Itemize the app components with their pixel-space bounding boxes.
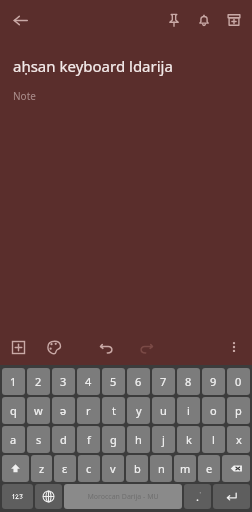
button[interactable]: g bbox=[102, 426, 125, 453]
staticText: q bbox=[10, 403, 17, 418]
staticText: Note bbox=[13, 89, 36, 103]
staticText: e bbox=[206, 461, 213, 476]
staticText: 7 bbox=[160, 374, 167, 389]
staticText: x bbox=[236, 432, 242, 447]
staticText: aḥsan keyboard ldarija bbox=[13, 56, 173, 76]
staticText: Moroccan Darija - MU bbox=[87, 492, 159, 502]
button[interactable]: o bbox=[202, 397, 225, 424]
button[interactable]: ə bbox=[52, 397, 75, 424]
staticText: z bbox=[39, 461, 45, 476]
staticText: 1 bbox=[10, 374, 17, 389]
staticText: o bbox=[210, 403, 217, 418]
staticText: 2 bbox=[35, 374, 42, 389]
button[interactable]: Language bbox=[35, 484, 62, 509]
button[interactable]: c bbox=[78, 455, 100, 482]
button[interactable]: l bbox=[202, 426, 225, 453]
button[interactable]: i bbox=[177, 397, 200, 424]
staticText: f bbox=[87, 432, 91, 447]
button[interactable]: r bbox=[77, 397, 100, 424]
staticText: l bbox=[212, 432, 215, 447]
button[interactable]: 7 bbox=[152, 368, 175, 395]
staticText: w bbox=[34, 403, 43, 418]
button[interactable]: h bbox=[127, 426, 150, 453]
button[interactable]: 8 bbox=[177, 368, 200, 395]
staticText: h bbox=[135, 432, 142, 447]
button[interactable]: m bbox=[174, 455, 196, 482]
button[interactable]: 2 bbox=[27, 368, 50, 395]
staticText: n bbox=[158, 461, 165, 476]
button[interactable]: Redo bbox=[132, 333, 160, 361]
button[interactable]: Colour palette bbox=[40, 333, 68, 361]
staticText: i bbox=[187, 403, 190, 418]
button[interactable]: More options bbox=[220, 333, 248, 361]
button[interactable] bbox=[2, 455, 29, 482]
button[interactable]: v bbox=[102, 455, 124, 482]
staticText: b bbox=[134, 461, 141, 476]
button[interactable]: a bbox=[2, 426, 25, 453]
button[interactable]: z bbox=[31, 455, 52, 482]
staticText: 4 bbox=[85, 374, 92, 389]
button[interactable]: s bbox=[27, 426, 50, 453]
button[interactable]: 1 bbox=[2, 368, 25, 395]
staticText: g bbox=[110, 432, 117, 447]
button[interactable]: t bbox=[102, 397, 125, 424]
button[interactable]: f bbox=[77, 426, 100, 453]
button[interactable]: Enter bbox=[213, 484, 250, 509]
button[interactable]: e bbox=[198, 455, 220, 482]
button[interactable]: k bbox=[177, 426, 200, 453]
staticText: v bbox=[110, 461, 116, 476]
staticText: s bbox=[36, 432, 42, 447]
staticText: y bbox=[136, 403, 142, 418]
button[interactable]: Pin bbox=[159, 5, 189, 35]
staticText: r bbox=[86, 403, 91, 418]
staticText: c bbox=[86, 461, 92, 476]
button[interactable]: 9 bbox=[202, 368, 225, 395]
staticText: 9 bbox=[210, 374, 217, 389]
button[interactable]: y bbox=[127, 397, 150, 424]
staticText: 6 bbox=[135, 374, 142, 389]
button[interactable]: Archive bbox=[219, 5, 249, 35]
staticText: k bbox=[186, 432, 192, 447]
button[interactable]: Numbers bbox=[2, 484, 33, 509]
button[interactable]: Period bbox=[184, 484, 211, 509]
staticText: 0 bbox=[235, 374, 242, 389]
button[interactable]: Back bbox=[6, 6, 34, 34]
staticText: ə bbox=[60, 403, 67, 418]
button[interactable]: ɛ bbox=[54, 455, 76, 482]
button[interactable]: d bbox=[52, 426, 75, 453]
button[interactable]: Moroccan Darija - MU bbox=[64, 484, 182, 509]
button[interactable]: u bbox=[152, 397, 175, 424]
button[interactable]: Undo bbox=[92, 333, 120, 361]
staticText: u bbox=[160, 403, 167, 418]
staticText: d bbox=[60, 432, 67, 447]
button[interactable]: Add attachment bbox=[4, 333, 32, 361]
staticText: 8 bbox=[185, 374, 192, 389]
staticText: ɛ bbox=[62, 461, 68, 476]
staticText: m bbox=[180, 461, 191, 476]
staticText: a bbox=[10, 432, 17, 447]
button[interactable]: p bbox=[227, 397, 250, 424]
button[interactable]: 3 bbox=[52, 368, 75, 395]
staticText: 5 bbox=[110, 374, 117, 389]
button[interactable]: b bbox=[126, 455, 148, 482]
button[interactable]: x bbox=[227, 426, 250, 453]
button[interactable]: 4 bbox=[77, 368, 100, 395]
staticText: t bbox=[112, 403, 116, 418]
button[interactable]: q bbox=[2, 397, 25, 424]
button[interactable]: j bbox=[152, 426, 175, 453]
staticText: p bbox=[235, 403, 242, 418]
button[interactable]: Reminder bbox=[189, 5, 219, 35]
button[interactable]: n bbox=[150, 455, 172, 482]
button[interactable]: w bbox=[27, 397, 50, 424]
staticText: 3 bbox=[60, 374, 67, 389]
button[interactable]: 5 bbox=[102, 368, 125, 395]
button[interactable] bbox=[222, 455, 250, 482]
staticText: j bbox=[162, 432, 165, 447]
button[interactable]: 6 bbox=[127, 368, 150, 395]
button[interactable]: 0 bbox=[227, 368, 250, 395]
